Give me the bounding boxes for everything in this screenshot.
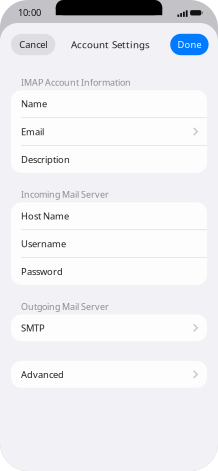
staticText: Incoming Mail Server (21, 188, 109, 200)
button[interactable]: SMTP (11, 314, 207, 341)
staticText: Description (21, 153, 70, 166)
staticText: Outgoing Mail Server (21, 300, 109, 312)
staticText: Host Name (21, 209, 69, 222)
staticText: SMTP (21, 321, 45, 334)
staticText: IMAP Account Information (21, 76, 131, 88)
button[interactable]: Password (11, 258, 207, 285)
staticText: Cancel (19, 38, 47, 51)
staticText: Name (21, 97, 47, 110)
button[interactable]: Done (170, 34, 209, 55)
button[interactable]: Email (11, 118, 207, 145)
staticText: Username (21, 237, 66, 250)
button[interactable]: Advanced (11, 361, 207, 388)
button[interactable]: Host Name (11, 202, 207, 229)
staticText: Advanced (21, 368, 64, 381)
button[interactable]: Description (11, 146, 207, 173)
staticText: 10:00 (18, 6, 41, 19)
button[interactable]: Cancel (11, 34, 55, 55)
staticText: Email (21, 125, 44, 138)
staticText: Password (21, 265, 63, 278)
button[interactable]: Name (11, 90, 207, 117)
staticText: Done (177, 38, 201, 51)
button[interactable]: Username (11, 230, 207, 257)
staticText: Account Settings (71, 38, 150, 51)
